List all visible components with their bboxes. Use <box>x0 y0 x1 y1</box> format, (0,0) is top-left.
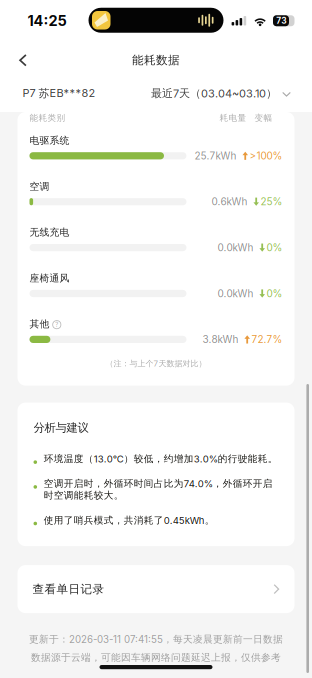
staticText: 0.0kWh <box>217 242 253 254</box>
staticText: 3.8kWh <box>202 333 238 345</box>
staticText: P7 苏EB***82 <box>22 86 95 100</box>
staticText: 72.7% <box>251 333 282 345</box>
staticText: 空调 <box>29 180 49 192</box>
staticText: 0.6kWh <box>211 196 247 208</box>
button[interactable]: 查看单日记录 <box>17 565 294 613</box>
staticText: 0% <box>266 242 282 254</box>
staticText: 电驱系统 <box>29 134 69 147</box>
staticText: 查看单日记录 <box>32 582 104 596</box>
staticText: 座椅通风 <box>29 272 69 284</box>
staticText: （注：与上个7天数据对比） <box>105 358 206 369</box>
button[interactable]: 最近7天（03.04~03.10） <box>151 84 291 102</box>
staticText: 空调开启时，外循环时间占比为74.0%，外循环开启时空调能耗较大。 <box>44 478 273 501</box>
staticText: 其他 <box>29 318 49 330</box>
staticText: 0.0kWh <box>217 287 253 300</box>
staticText: 数据源于云端，可能因车辆网络问题延迟上报，仅供参考 <box>31 651 281 663</box>
staticText: 14:25 <box>27 12 66 29</box>
staticText: 能耗数据 <box>132 53 180 67</box>
staticText: ? <box>55 321 58 328</box>
staticText: 使用了哨兵模式，共消耗了0.45kWh。 <box>44 514 215 526</box>
staticText: 耗电量 <box>219 113 246 123</box>
staticText: 分析与建议 <box>33 421 88 435</box>
staticText: 0% <box>266 287 282 300</box>
staticText: 更新于：2026-03-11 07:41:55，每天凌晨更新前一日数据 <box>29 633 283 645</box>
staticText: 能耗类别 <box>29 113 65 123</box>
staticText: 25.7kWh <box>194 150 236 162</box>
staticText: >100% <box>250 150 283 162</box>
staticText: 25% <box>260 196 282 208</box>
staticText: 最近7天（03.04~03.10） <box>151 86 277 100</box>
button[interactable]: 返回 <box>7 45 39 75</box>
staticText: 变幅 <box>254 113 272 123</box>
staticText: 无线充电 <box>29 226 69 238</box>
staticText: 73 <box>276 16 286 26</box>
staticText: 环境温度（13.0°C）较低，约增加3.0%的行驶能耗。 <box>44 453 278 465</box>
